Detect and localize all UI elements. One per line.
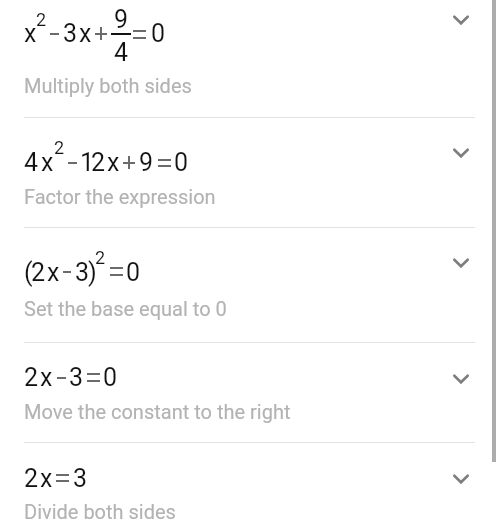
- staticText: 3: [75, 258, 90, 287]
- staticText: 2: [36, 9, 47, 30]
- staticText: ): [88, 258, 97, 287]
- staticText: x: [47, 258, 60, 287]
- button[interactable]: Expand step: [437, 455, 485, 503]
- staticText: 4: [114, 38, 129, 67]
- staticText: 4: [24, 148, 39, 177]
- staticText: x: [79, 19, 92, 48]
- staticText: x: [107, 148, 120, 177]
- staticText: 3: [73, 464, 88, 493]
- button[interactable]: Expand step: [437, 0, 485, 44]
- staticText: Move the constant to the right: [24, 400, 291, 423]
- button[interactable]: (: [0, 227, 500, 342]
- staticText: 0: [126, 258, 141, 287]
- staticText: 3: [69, 363, 84, 392]
- staticText: Factor the expression: [24, 185, 216, 208]
- staticText: 2: [31, 258, 46, 287]
- staticText: 3: [63, 19, 78, 48]
- staticText: 9: [139, 148, 154, 177]
- staticText: 9: [114, 5, 129, 34]
- staticText: 2: [24, 363, 39, 392]
- button[interactable]: Expand step: [437, 129, 485, 177]
- button[interactable]: 2: [0, 442, 500, 528]
- staticText: x: [24, 19, 37, 48]
- staticText: 0: [151, 19, 166, 48]
- button[interactable]: Expand step: [437, 239, 485, 287]
- staticText: x: [41, 148, 54, 177]
- staticText: 0: [103, 363, 118, 392]
- staticText: 0: [174, 148, 189, 177]
- staticText: 1: [80, 148, 95, 177]
- staticText: 2: [54, 137, 65, 158]
- staticText: 2: [95, 247, 106, 268]
- staticText: Divide both sides: [24, 500, 176, 523]
- staticText: 2: [91, 148, 106, 177]
- staticText: (: [24, 258, 33, 287]
- button[interactable]: Expand step: [437, 355, 485, 403]
- button[interactable]: x: [0, 0, 500, 117]
- staticText: 2: [24, 464, 39, 493]
- button[interactable]: 4: [0, 117, 500, 227]
- staticText: x: [40, 363, 53, 392]
- staticText: Multiply both sides: [24, 74, 192, 97]
- staticText: x: [40, 464, 53, 493]
- button[interactable]: 2: [0, 342, 500, 442]
- staticText: Set the base equal to 0: [24, 297, 227, 320]
